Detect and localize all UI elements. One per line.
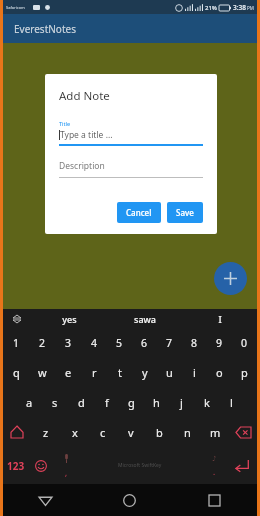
button[interactable]: j [169, 387, 194, 417]
button[interactable]: w [29, 357, 55, 387]
button[interactable]: Add note [214, 262, 247, 295]
staticText: 123 [7, 459, 25, 473]
button[interactable]: f [94, 387, 119, 417]
staticText: d [78, 395, 85, 410]
button[interactable]: p [232, 357, 257, 387]
staticText: 5 [116, 336, 123, 350]
staticText: 1 [13, 336, 20, 350]
button[interactable]: I [182, 309, 257, 329]
button[interactable]: o [207, 357, 232, 387]
staticText: Save [176, 207, 194, 218]
staticText: 21% [205, 4, 217, 12]
staticText: yes [62, 313, 77, 325]
staticText: 8 [191, 336, 198, 350]
staticText: q [13, 365, 20, 380]
staticText: h [153, 395, 160, 410]
button[interactable]: t [107, 357, 132, 387]
staticText: r [92, 365, 97, 380]
button[interactable]: y [132, 357, 157, 387]
staticText: j [180, 395, 183, 410]
staticText: o [216, 365, 223, 380]
staticText: m [210, 425, 221, 440]
button[interactable]: 2 [29, 329, 55, 357]
button[interactable]: Back [3, 484, 87, 516]
button[interactable]: Save [167, 202, 203, 223]
staticText: EverestNotes [14, 22, 76, 36]
button[interactable]: 6 [132, 329, 157, 357]
staticText: Type a title ... [60, 129, 113, 141]
staticText: Add Note [59, 88, 110, 104]
button[interactable]: k [194, 387, 219, 417]
staticText: s [52, 395, 58, 410]
staticText: PM [247, 5, 254, 11]
staticText: i [193, 365, 196, 380]
button[interactable]: Voice input [53, 447, 79, 484]
staticText: ♪ [212, 455, 217, 463]
button[interactable]: g [119, 387, 144, 417]
staticText: 2 [39, 336, 46, 350]
button[interactable]: d [68, 387, 94, 417]
staticText: . [213, 466, 216, 477]
staticText: 3 [65, 336, 72, 350]
button[interactable]: Microsoft SwiftKey [79, 447, 201, 484]
button[interactable]: i [182, 357, 207, 387]
button[interactable]: h [144, 387, 169, 417]
button[interactable]: Emoji [29, 447, 53, 484]
button[interactable]: q [3, 357, 29, 387]
button[interactable]: 0 [232, 329, 257, 357]
button[interactable]: x [60, 417, 89, 447]
button[interactable]: 7 [157, 329, 182, 357]
staticText: sawa [134, 313, 156, 325]
staticText: I [218, 313, 222, 325]
staticText: n [184, 425, 191, 440]
button[interactable]: 4 [81, 329, 107, 357]
staticText: f [105, 395, 109, 410]
button[interactable]: u [157, 357, 182, 387]
staticText: c [100, 425, 106, 440]
staticText: 9 [216, 336, 223, 350]
button[interactable]: r [81, 357, 107, 387]
button[interactable]: 3 [55, 329, 81, 357]
button[interactable]: 1 [3, 329, 29, 357]
button[interactable]: Shift [3, 417, 31, 447]
staticText: p [241, 365, 248, 380]
button[interactable]: c [89, 417, 117, 447]
staticText: a [26, 395, 33, 410]
button[interactable]: v [117, 417, 145, 447]
button[interactable]: z [31, 417, 60, 447]
button[interactable]: Enter [227, 447, 257, 484]
button[interactable]: a [16, 387, 42, 417]
button[interactable]: 5 [107, 329, 132, 357]
button[interactable]: s [42, 387, 68, 417]
staticText: 4 [91, 336, 98, 350]
button[interactable]: Expand suggestions [3, 309, 31, 329]
staticText: v [128, 425, 134, 440]
button[interactable]: Settings [201, 447, 227, 484]
staticText: 0 [241, 336, 248, 350]
button[interactable]: Recents [172, 484, 257, 516]
button[interactable]: 9 [207, 329, 232, 357]
staticText: Cancel [126, 207, 152, 218]
staticText: y [142, 365, 148, 380]
button[interactable]: Home [87, 484, 172, 516]
button[interactable]: Backspace [229, 417, 257, 447]
staticText: 7 [166, 336, 173, 350]
staticText: e [65, 365, 72, 380]
button[interactable]: sawa [107, 309, 182, 329]
button[interactable]: 123 [3, 447, 29, 484]
button[interactable]: EverestNotes [3, 14, 257, 43]
staticText: b [156, 425, 163, 440]
button[interactable]: m [201, 417, 229, 447]
button[interactable]: l [219, 387, 244, 417]
button[interactable]: yes [31, 309, 107, 329]
button[interactable]: b [145, 417, 173, 447]
staticText: k [204, 395, 210, 410]
button[interactable]: 8 [182, 329, 207, 357]
staticText: Title [59, 120, 70, 127]
staticText: l [230, 395, 233, 410]
button[interactable]: n [173, 417, 201, 447]
button[interactable]: e [55, 357, 81, 387]
button[interactable]: Cancel [117, 202, 161, 223]
staticText: t [118, 365, 122, 380]
staticText: Description [59, 160, 105, 172]
